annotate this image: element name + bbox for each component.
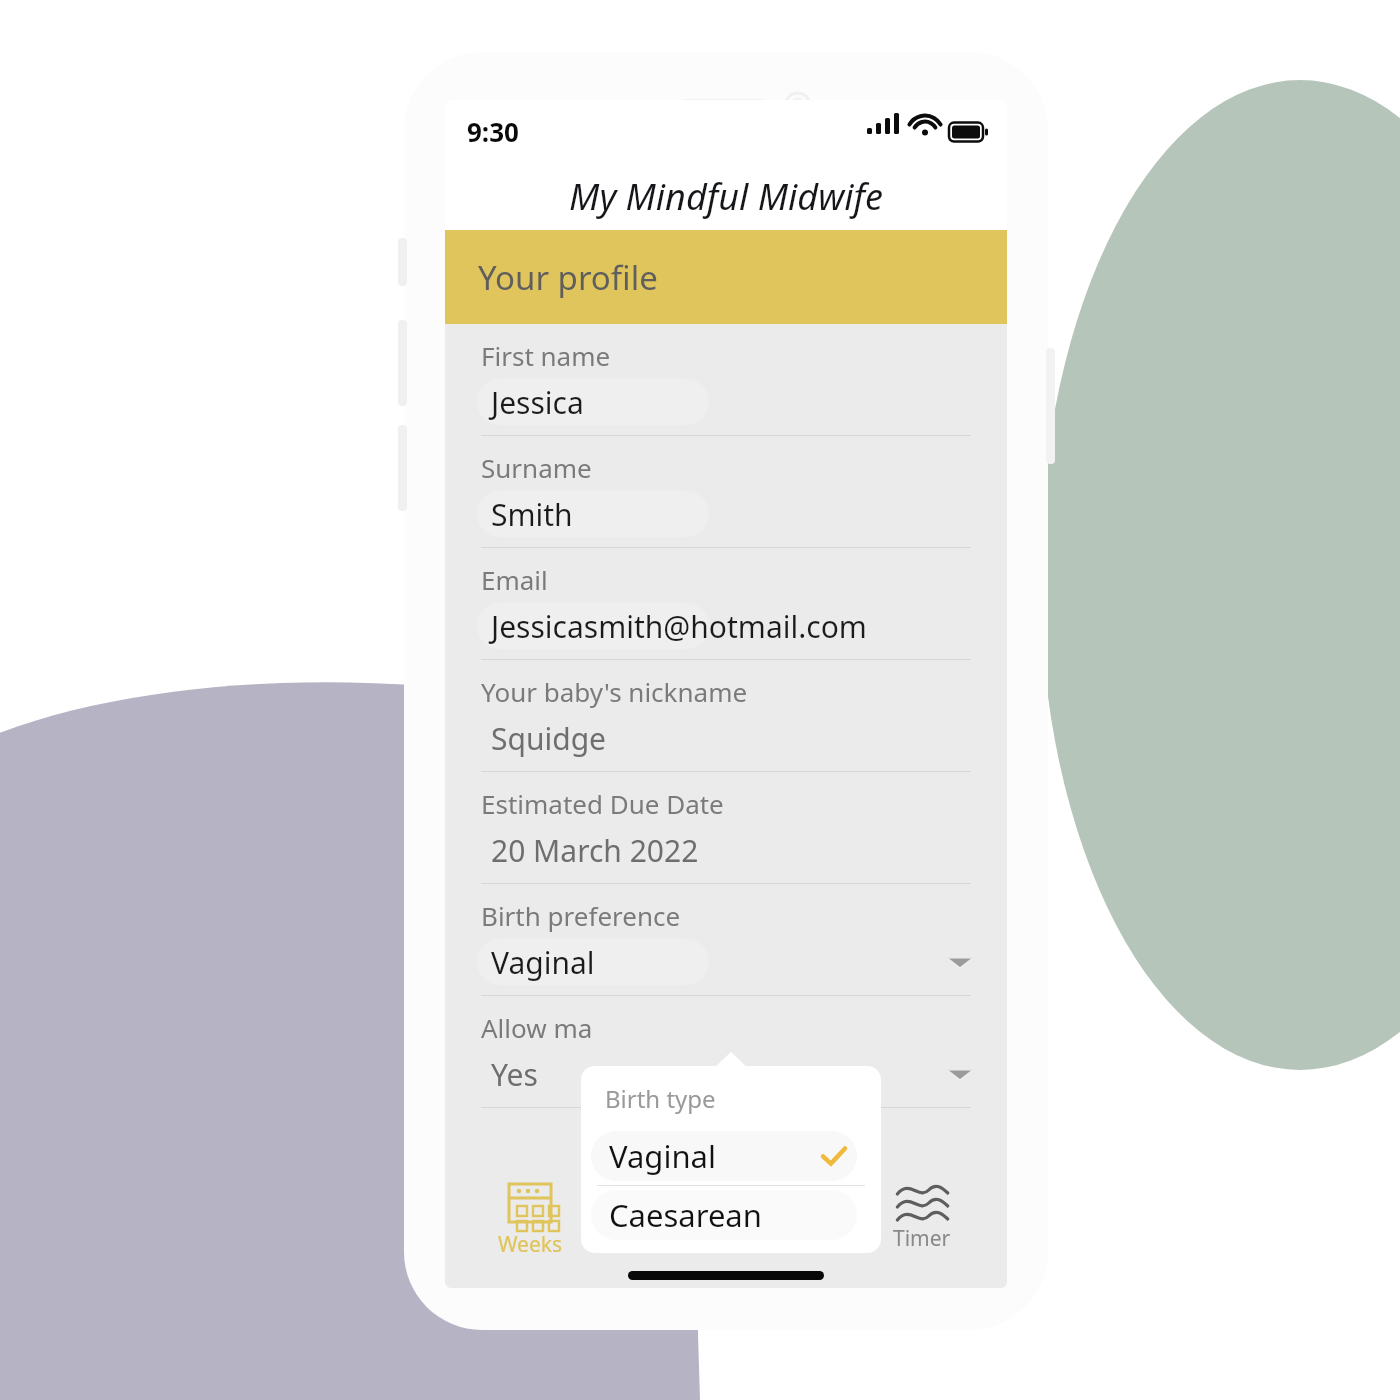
staticText: Smith [491,494,573,535]
staticText: Email [481,562,548,597]
staticText: 20 March 2022 [491,830,699,871]
other: Timer [894,1180,950,1222]
staticText: Jessica [491,382,584,423]
button[interactable]: Surname [445,436,1007,548]
staticText: Caesarean [609,1194,762,1236]
button[interactable]: Allow ma [445,996,1007,1108]
button[interactable]: Birth preference [445,884,1007,996]
staticText: Birth preference [481,898,681,933]
staticText: Birth type [605,1082,716,1115]
staticText: Weeks [498,1230,563,1259]
staticText: My Mindful Midwife [569,172,883,221]
staticText: Surname [481,450,592,485]
staticText: First name [481,338,611,373]
staticText: Timer [893,1224,951,1253]
staticText: Jessicasmith@hotmail.com [491,606,867,647]
button[interactable]: Email [445,548,1007,660]
button[interactable]: Estimated Due Date [445,772,1007,884]
staticText: Yes [491,1054,538,1095]
other: Weeks [507,1180,553,1226]
button[interactable]: Timer [867,1180,977,1253]
button[interactable]: Vaginal [581,1127,881,1185]
staticText: Your baby's nickname [481,674,748,709]
button[interactable]: Your baby's nickname [445,660,1007,772]
button[interactable]: Weeks [475,1180,585,1259]
button[interactable]: First name [445,324,1007,436]
staticText: Your profile [478,255,658,300]
staticText: Vaginal [609,1135,716,1177]
staticText: Estimated Due Date [481,786,724,821]
button[interactable]: Caesarean [581,1186,881,1244]
staticText: Vaginal [491,942,595,983]
button[interactable]: Your profile [445,230,1007,324]
staticText: Allow ma [481,1010,593,1045]
staticText: 9:30 [467,114,519,149]
staticText: Squidge [491,718,607,759]
